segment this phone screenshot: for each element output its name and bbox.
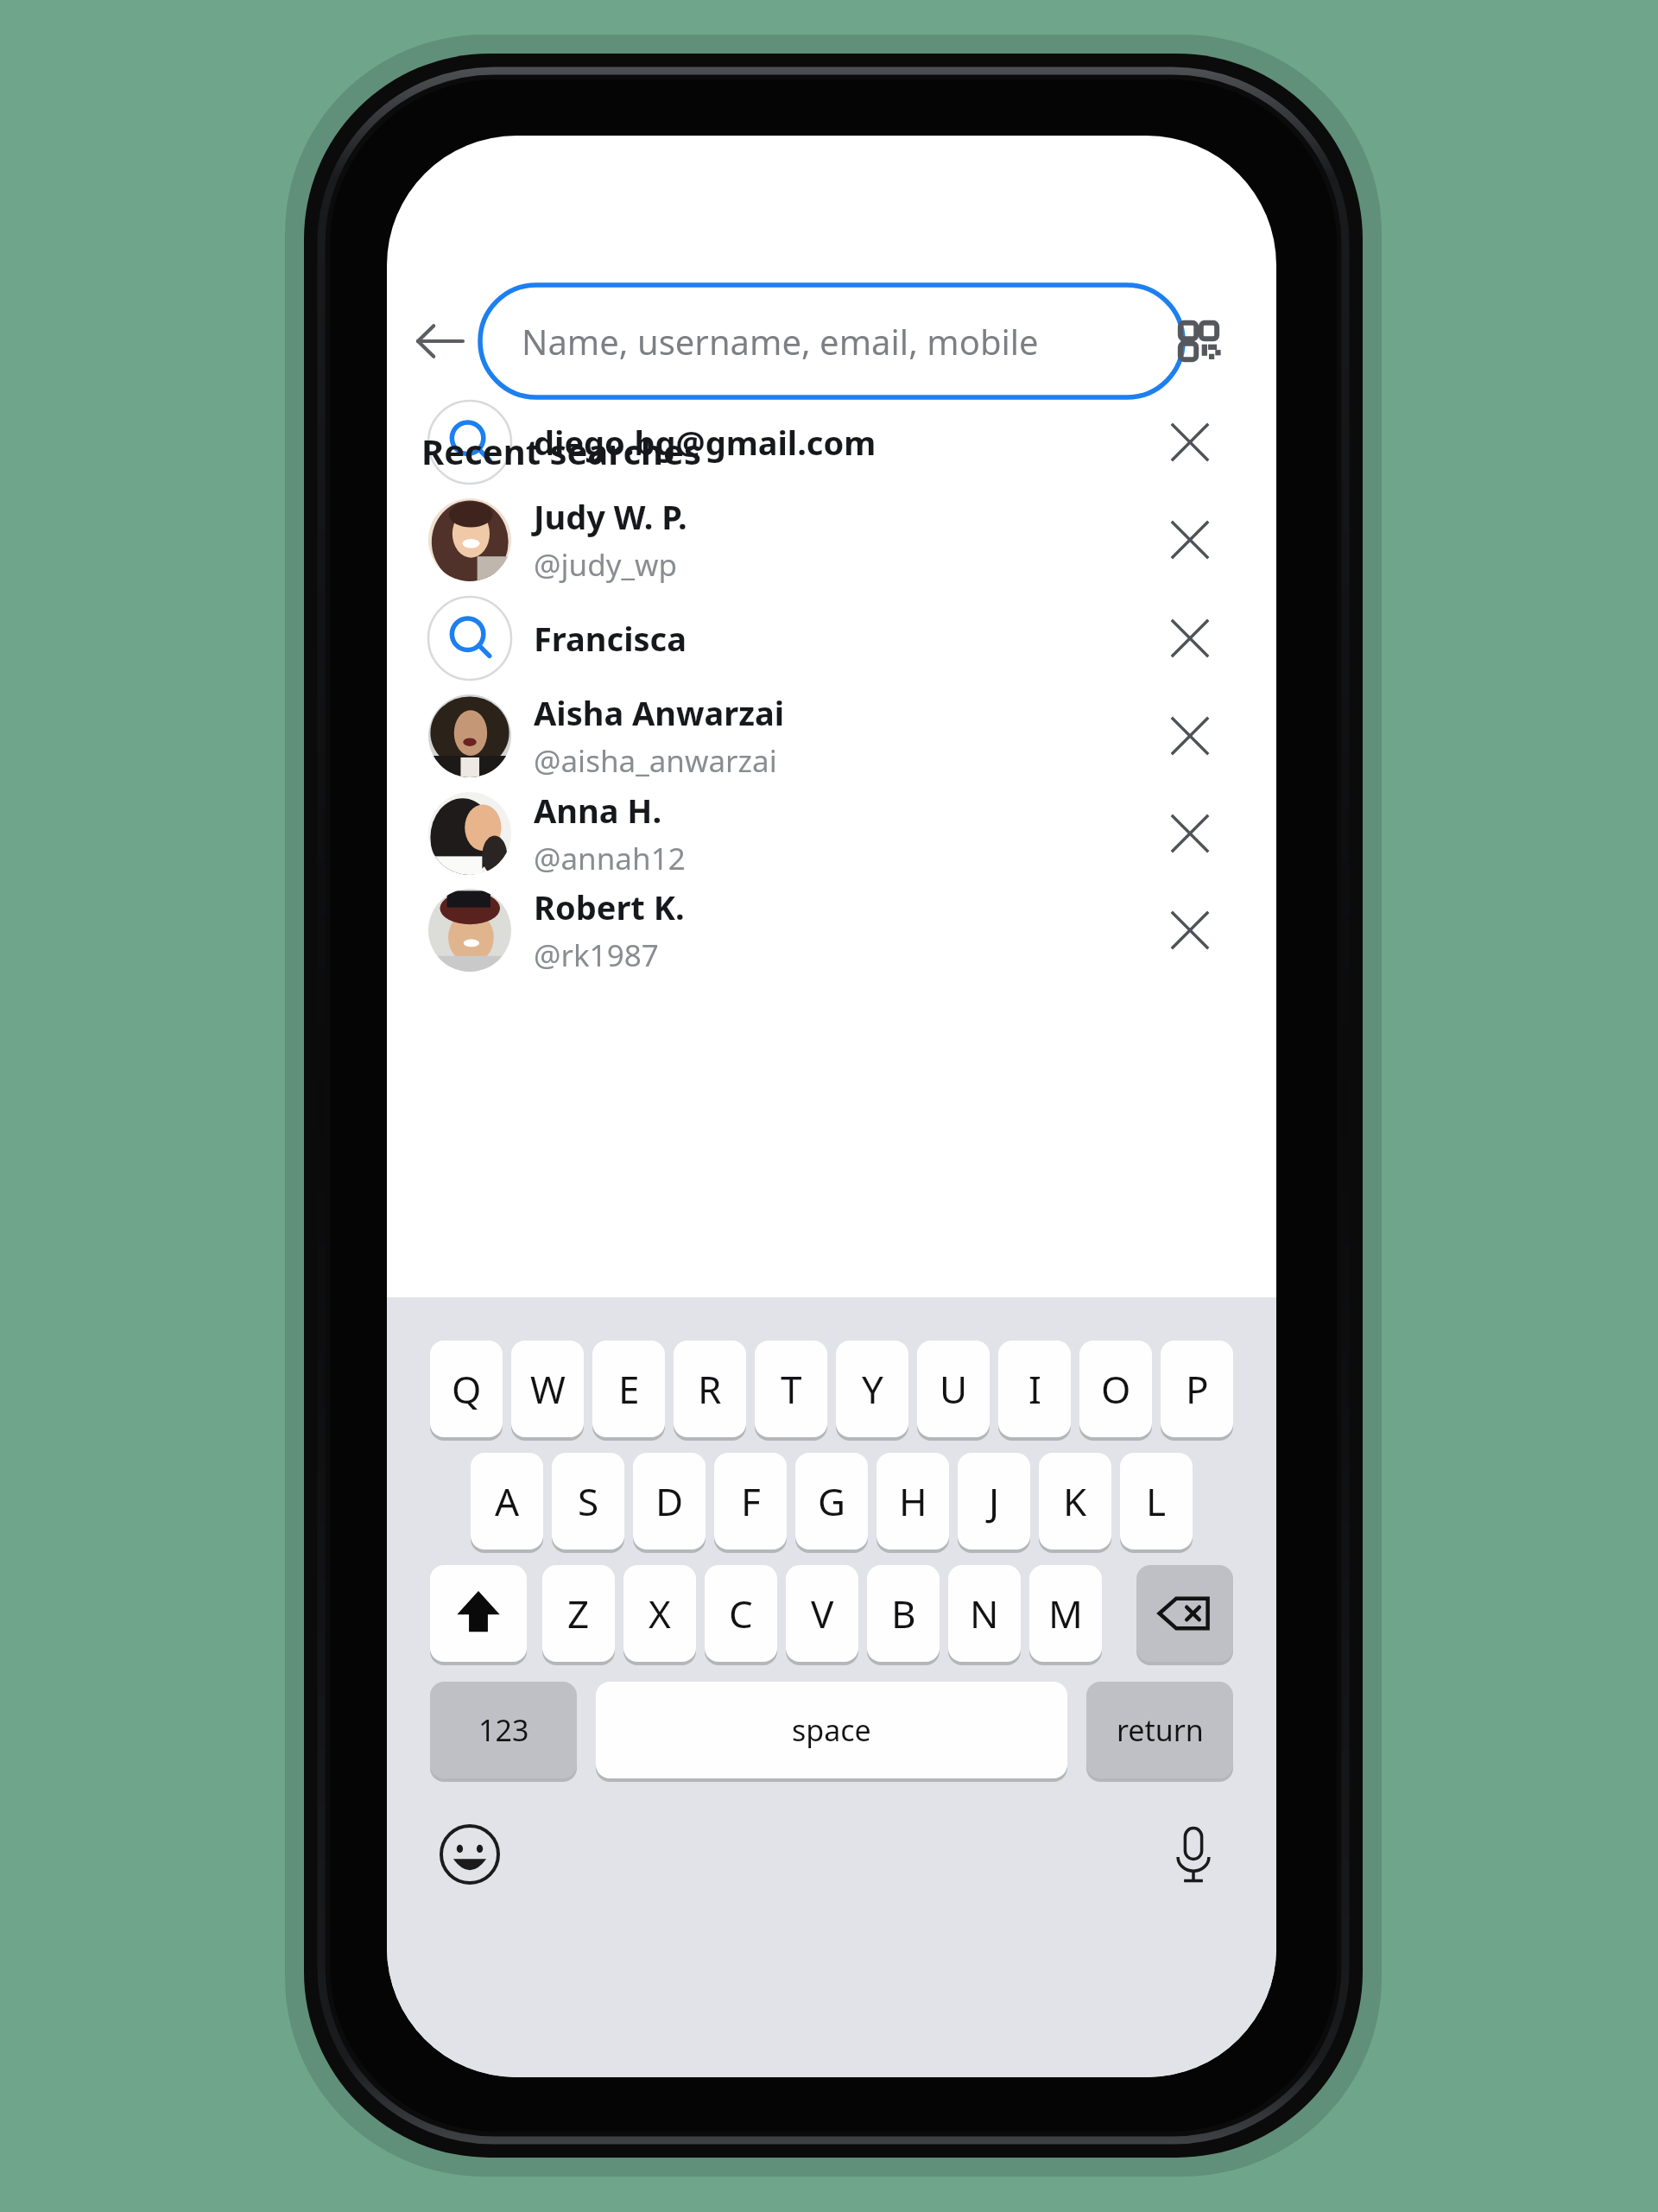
button[interactable]: diego.bg@gmail.com [404, 394, 1147, 491]
button[interactable]: H [876, 1453, 949, 1550]
button[interactable]: L [1120, 1453, 1193, 1550]
button[interactable]: E [592, 1341, 665, 1437]
staticText: J [989, 1475, 1000, 1527]
staticText: Q [452, 1363, 482, 1415]
staticText: D [655, 1475, 684, 1527]
staticText: V [811, 1588, 834, 1639]
staticText: N [970, 1588, 999, 1639]
button[interactable]: C [705, 1565, 777, 1662]
button[interactable]: Remove Judy W. P. [1147, 501, 1233, 579]
button[interactable]: M [1029, 1565, 1102, 1662]
staticText: Francisca [534, 616, 687, 661]
staticText: @judy_wp [534, 544, 678, 586]
button[interactable]: A [471, 1453, 543, 1550]
button[interactable]: K [1039, 1453, 1111, 1550]
staticText: S [578, 1475, 599, 1527]
staticText: Judy W. P. [534, 494, 687, 539]
button[interactable]: O [1079, 1341, 1152, 1437]
button[interactable]: Aisha Anwarzai [404, 688, 1147, 784]
staticText: F [741, 1475, 761, 1527]
button[interactable]: Name, username, email, mobile [480, 285, 1183, 397]
button[interactable]: B [867, 1565, 940, 1662]
button[interactable]: Emoji [430, 1811, 516, 1898]
button[interactable]: Remove Anna H. [1147, 795, 1233, 872]
button[interactable]: Y [836, 1341, 908, 1437]
button[interactable]: Remove Robert K. [1147, 891, 1233, 969]
button[interactable]: J [958, 1453, 1030, 1550]
staticText: I [1028, 1363, 1041, 1415]
staticText: R [698, 1363, 722, 1415]
button[interactable]: Scan QR code [1147, 265, 1242, 360]
button[interactable]: return [1086, 1682, 1233, 1778]
button[interactable]: V [786, 1565, 858, 1662]
button[interactable]: Anna H. [404, 785, 1147, 882]
staticText: @annah12 [534, 838, 686, 879]
button[interactable]: Remove diego.bg@gmail.com [1147, 403, 1233, 481]
staticText: E [618, 1363, 640, 1415]
button[interactable]: R [674, 1341, 746, 1437]
staticText: Y [862, 1363, 883, 1415]
button[interactable]: D [633, 1453, 706, 1550]
staticText: P [1186, 1363, 1209, 1415]
staticText: Name, username, email, mobile [522, 318, 1039, 364]
button[interactable]: F [714, 1453, 787, 1550]
staticText: C [729, 1588, 753, 1639]
button[interactable]: W [511, 1341, 584, 1437]
button[interactable]: Backspace [1136, 1565, 1233, 1662]
button[interactable]: N [948, 1565, 1021, 1662]
staticText: W [530, 1363, 566, 1415]
button[interactable]: 123 [430, 1682, 577, 1778]
button[interactable]: X [623, 1565, 696, 1662]
button[interactable]: U [917, 1341, 990, 1437]
button[interactable]: P [1161, 1341, 1233, 1437]
staticText: Aisha Anwarzai [534, 690, 785, 735]
staticText: @rk1987 [534, 935, 659, 976]
staticText: Robert K. [534, 884, 685, 929]
staticText: O [1101, 1363, 1131, 1415]
staticText: B [891, 1588, 916, 1639]
staticText: space [792, 1710, 871, 1750]
staticText: diego.bg@gmail.com [534, 420, 876, 465]
staticText: G [818, 1475, 846, 1527]
staticText: K [1063, 1475, 1087, 1527]
button[interactable]: Robert K. [404, 882, 1147, 979]
button[interactable]: S [552, 1453, 624, 1550]
button[interactable]: Judy W. P. [404, 491, 1147, 588]
button[interactable]: space [596, 1682, 1067, 1778]
button[interactable]: Shift [430, 1565, 527, 1662]
button[interactable]: Remove Francisca [1147, 599, 1233, 677]
staticText: @aisha_anwarzai [534, 740, 777, 782]
staticText: T [781, 1363, 802, 1415]
staticText: Anna H. [534, 788, 662, 833]
button[interactable]: Q [430, 1341, 503, 1437]
button[interactable]: Z [542, 1565, 615, 1662]
staticText: return [1117, 1710, 1204, 1750]
staticText: Z [567, 1588, 590, 1639]
button[interactable]: G [795, 1453, 868, 1550]
staticText: 123 [478, 1710, 529, 1750]
button[interactable]: Remove Aisha Anwarzai [1147, 697, 1233, 775]
button[interactable]: I [998, 1341, 1071, 1437]
staticText: M [1048, 1588, 1083, 1639]
staticText: X [649, 1588, 671, 1639]
staticText: Recent searches [421, 428, 701, 474]
button[interactable]: Back [439, 265, 534, 360]
staticText: H [899, 1475, 927, 1527]
button[interactable]: T [755, 1341, 827, 1437]
staticText: A [495, 1475, 520, 1527]
button[interactable]: Voice input [1147, 1811, 1233, 1898]
staticText: U [940, 1363, 968, 1415]
button[interactable]: Francisca [404, 590, 1147, 687]
staticText: L [1146, 1475, 1167, 1527]
